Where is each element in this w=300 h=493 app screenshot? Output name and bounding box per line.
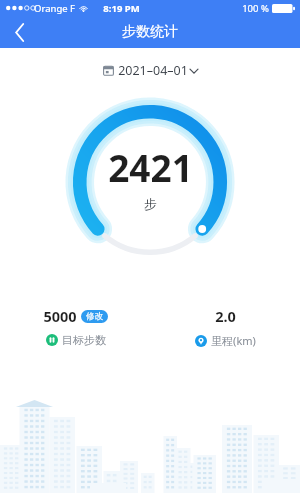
button[interactable]: 修改 <box>81 310 108 323</box>
staticText: 8:19 PM <box>103 2 140 15</box>
staticText: 步 <box>144 196 157 212</box>
staticText: 修改 <box>86 311 103 322</box>
staticText: Orange F <box>34 2 75 15</box>
staticText: 2421 <box>108 142 193 192</box>
staticText: 5000 <box>43 306 77 326</box>
staticText: 2.0 <box>215 306 236 326</box>
staticText: 里程(km) <box>211 333 256 348</box>
staticText: 2021–04–01 <box>118 62 188 79</box>
staticText: 100 % <box>242 2 269 15</box>
staticText: 目标步数 <box>62 333 106 347</box>
button[interactable]: 2021–04–01 <box>97 59 204 82</box>
staticText: 步数统计 <box>122 23 178 41</box>
button[interactable]: Back <box>0 16 40 48</box>
